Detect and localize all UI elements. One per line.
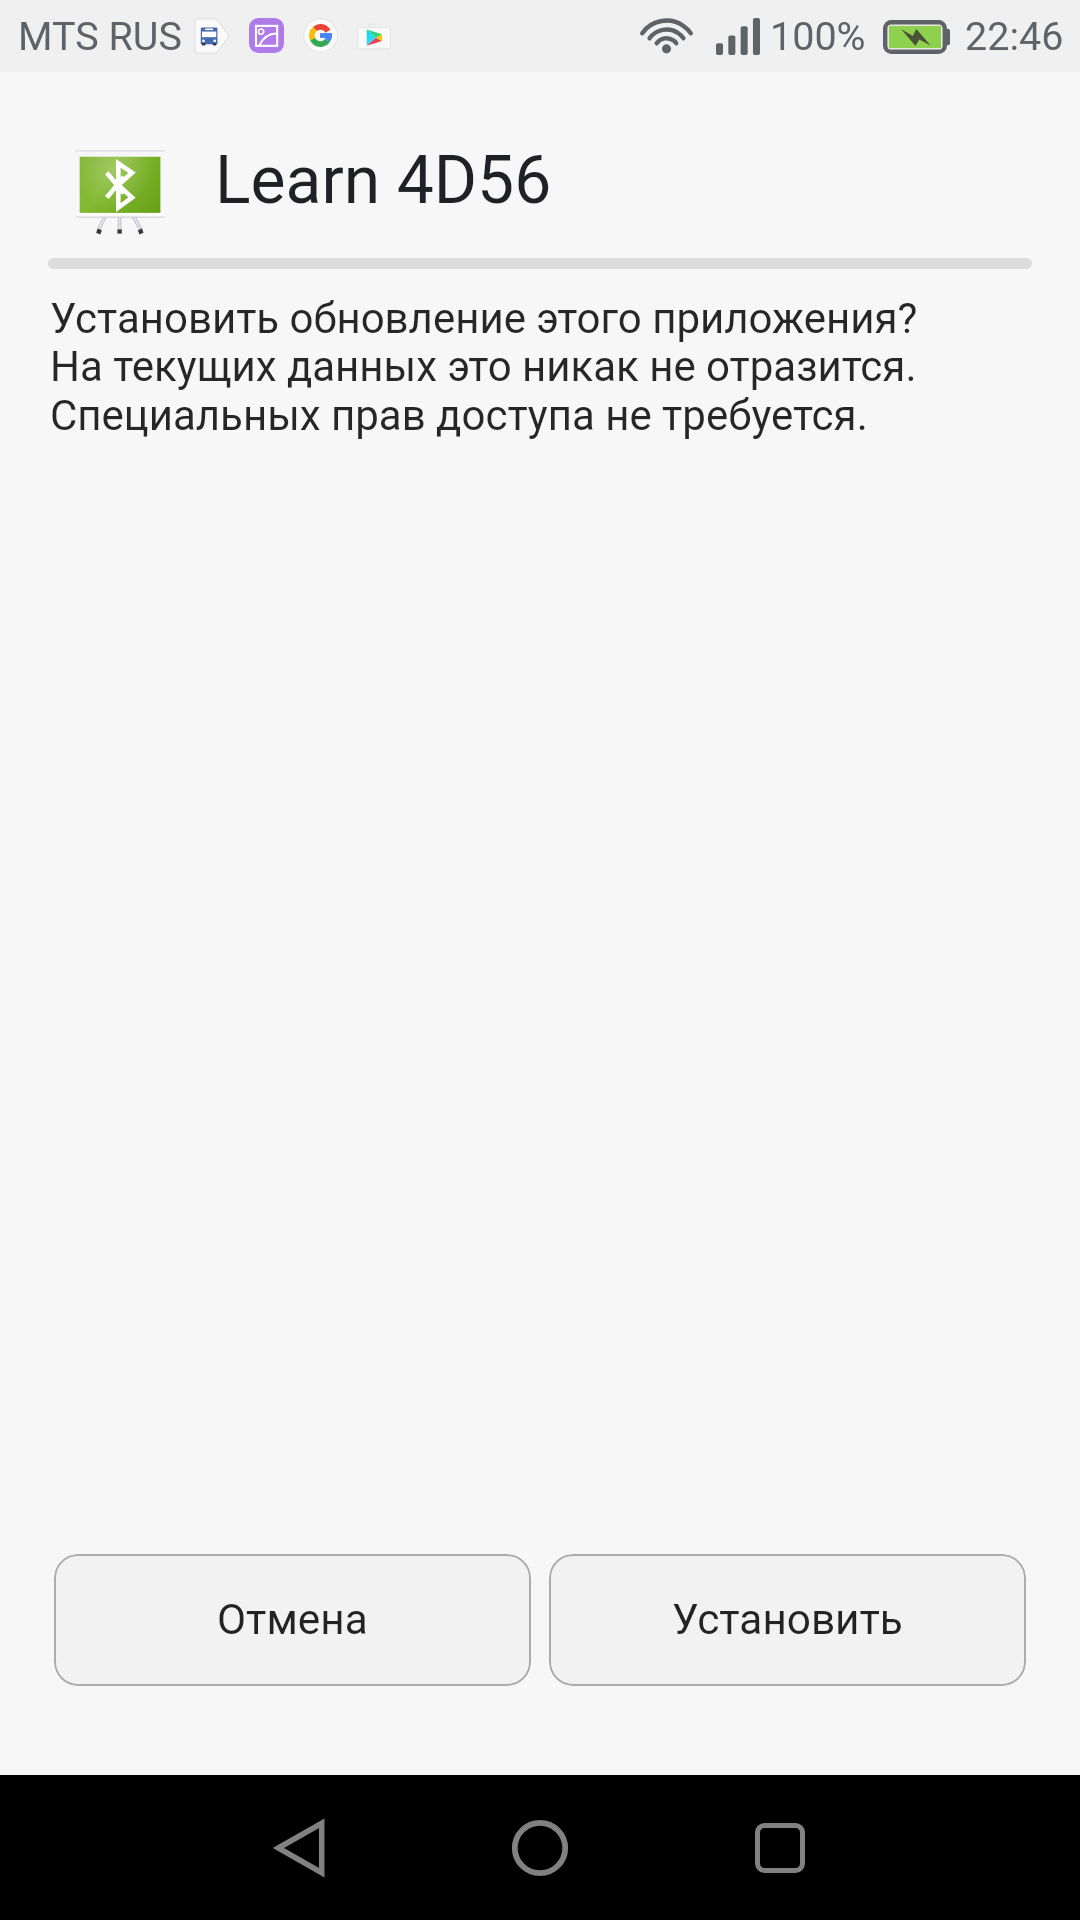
staticText: 100% bbox=[770, 13, 866, 59]
staticText: Установить bbox=[672, 1595, 903, 1645]
staticText: Отмена bbox=[217, 1595, 368, 1645]
staticText: MTS RUS bbox=[18, 13, 182, 59]
button[interactable]: Установить bbox=[549, 1554, 1026, 1686]
staticText: Установить обновление этого приложения? … bbox=[50, 294, 918, 441]
button[interactable]: Recents bbox=[700, 1775, 860, 1920]
button[interactable]: Отмена bbox=[54, 1554, 531, 1686]
staticText: Learn 4D56 bbox=[215, 142, 552, 219]
staticText: 22:46 bbox=[965, 13, 1064, 59]
button[interactable]: Home bbox=[460, 1775, 620, 1920]
button[interactable]: Back bbox=[220, 1775, 380, 1920]
